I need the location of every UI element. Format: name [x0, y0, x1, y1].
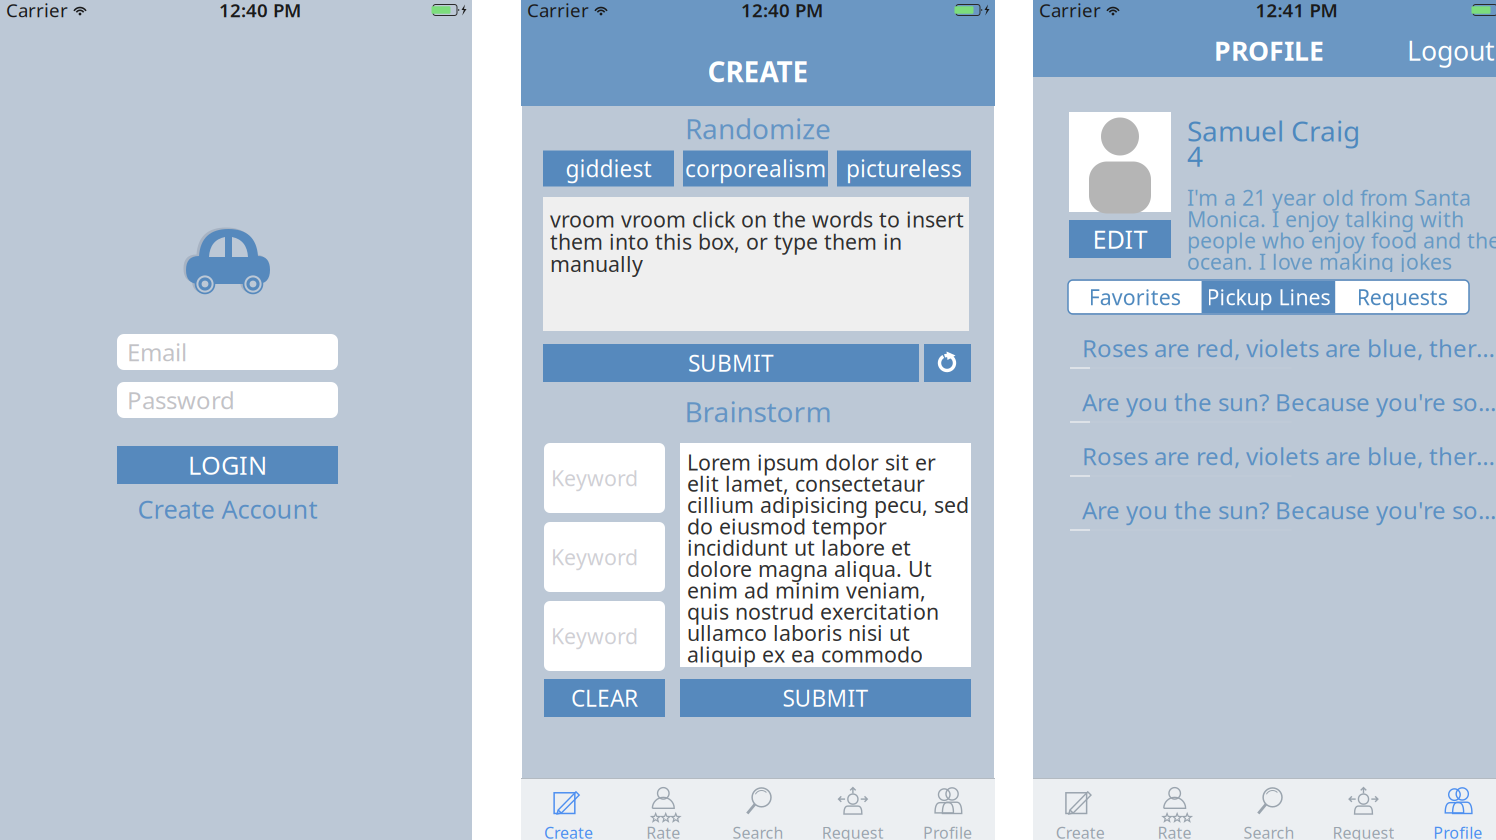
staticText: Create	[544, 822, 593, 840]
staticText: Search	[732, 822, 783, 840]
staticText: Are you the sun? Because you're so...	[1082, 494, 1496, 526]
staticText: Favorites	[1089, 283, 1181, 311]
button[interactable]: giddiest	[543, 150, 674, 186]
button[interactable]: Roses are red, violets are blue, there..…	[1033, 437, 1496, 491]
staticText: CLEAR	[571, 683, 638, 713]
staticText: Carrier	[6, 0, 68, 22]
staticText: Requests	[1357, 283, 1448, 311]
staticText: pictureless	[846, 153, 962, 183]
button[interactable]: Rate	[616, 779, 711, 840]
button[interactable]: corporealism	[683, 150, 828, 186]
staticText: Search	[1243, 822, 1294, 840]
staticText: Rate	[1158, 822, 1192, 840]
button[interactable]: Request	[805, 779, 900, 840]
staticText: Keyword	[551, 464, 638, 492]
button[interactable]: Rate	[1127, 779, 1222, 840]
button[interactable]: CLEAR	[544, 679, 665, 717]
button[interactable]: Create	[521, 779, 616, 840]
staticText: Roses are red, violets are blue, there..…	[1082, 440, 1496, 472]
staticText: Carrier	[527, 0, 589, 22]
staticText: LOGIN	[188, 448, 267, 482]
button[interactable]: SUBMIT	[680, 679, 971, 717]
staticText: Lorem ipsum dolor sit er elit lamet, con…	[687, 448, 969, 754]
button[interactable]: Logout	[1407, 33, 1495, 68]
staticText: corporealism	[685, 153, 826, 183]
staticText: 12:40 PM	[741, 0, 823, 22]
staticText: Roses are red, violets are blue, there..…	[1082, 332, 1496, 364]
button[interactable]: pictureless	[837, 150, 971, 186]
staticText: CREATE	[707, 53, 808, 90]
staticText: 12:40 PM	[219, 0, 301, 22]
staticText: Keyword	[551, 543, 638, 571]
staticText: Create	[1056, 822, 1105, 840]
staticText: Request	[822, 822, 884, 840]
staticText: 12:41 PM	[1255, 0, 1337, 22]
staticText: Logout	[1407, 33, 1495, 68]
button[interactable]: Create Account	[117, 496, 338, 522]
staticText: Create Account	[137, 492, 317, 526]
staticText: SUBMIT	[688, 348, 774, 378]
button[interactable]: Profile	[1411, 779, 1496, 840]
button[interactable]: Pickup Lines	[1202, 281, 1335, 313]
staticText: Request	[1332, 822, 1394, 840]
staticText: PROFILE	[1214, 33, 1324, 68]
button[interactable]: LOGIN	[117, 446, 338, 484]
button[interactable]: Requests	[1335, 281, 1469, 313]
staticText: Keyword	[551, 622, 638, 650]
button[interactable]: Are you the sun? Because you're so...	[1033, 383, 1496, 437]
button[interactable]: Are you the sun? Because you're so...	[1033, 491, 1496, 545]
staticText: EDIT	[1092, 222, 1147, 256]
button[interactable]: Favorites	[1068, 281, 1202, 313]
staticText: giddiest	[565, 153, 651, 183]
staticText: Rate	[646, 822, 680, 840]
button[interactable]: Create	[1033, 779, 1127, 840]
button[interactable]: Profile	[900, 779, 995, 840]
staticText: Email	[127, 336, 187, 368]
staticText: Profile	[1433, 822, 1482, 840]
staticText: Password	[127, 384, 235, 416]
staticText: Are you the sun? Because you're so...	[1082, 386, 1496, 418]
staticText: Samuel Craig 4	[1187, 112, 1360, 174]
staticText: SUBMIT	[782, 683, 868, 713]
button[interactable]: Roses are red, violets are blue, there..…	[1033, 329, 1496, 383]
button[interactable]: EDIT	[1069, 220, 1171, 258]
staticText: vroom vroom click on the words to insert…	[550, 205, 964, 278]
staticText: Profile	[923, 822, 972, 840]
staticText: Brainstorm	[684, 393, 831, 430]
button[interactable]: Randomize again	[924, 344, 971, 382]
button[interactable]: Request	[1316, 779, 1411, 840]
button[interactable]: Search	[711, 779, 805, 840]
button[interactable]: SUBMIT	[543, 344, 919, 382]
staticText: Pickup Lines	[1206, 283, 1330, 311]
staticText: I'm a 21 year old from Santa Monica. I e…	[1187, 183, 1496, 297]
staticText: Randomize	[685, 110, 831, 147]
button[interactable]: Search	[1222, 779, 1316, 840]
staticText: Carrier	[1039, 0, 1101, 22]
